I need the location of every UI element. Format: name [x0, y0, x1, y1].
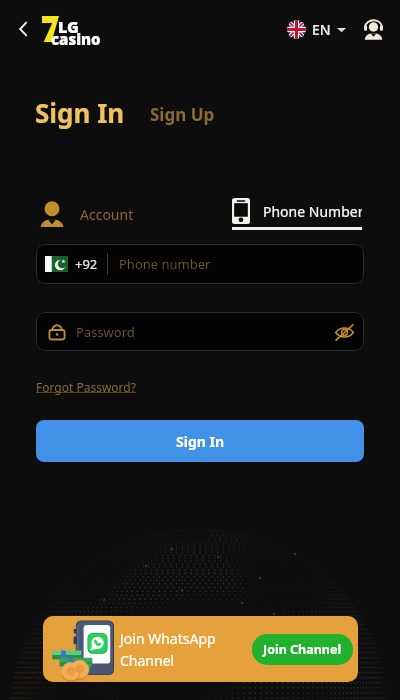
staticText: Phone Number: [263, 202, 362, 221]
button[interactable]: Sign In: [36, 420, 364, 462]
staticText: Sign In: [176, 432, 225, 451]
button[interactable]: Sign Up: [150, 103, 215, 126]
staticText: Phone number: [119, 255, 211, 273]
staticText: Password: [76, 323, 135, 341]
staticText: Join Channel: [263, 641, 342, 658]
button[interactable]: Forgot Password?: [36, 378, 136, 396]
staticText: casino: [51, 29, 101, 49]
button[interactable]: Account: [36, 196, 196, 232]
button[interactable]: EN: [287, 16, 346, 43]
button[interactable]: +92: [36, 244, 364, 284]
button[interactable]: Join WhatsApp Channel: [43, 616, 358, 682]
button[interactable]: Sign In: [35, 95, 125, 130]
button[interactable]: Support: [359, 15, 387, 43]
staticText: Join WhatsApp Channel: [120, 629, 216, 670]
button[interactable]: 7LG casino: [42, 16, 100, 43]
button[interactable]: Back: [6, 12, 40, 46]
staticText: Account: [80, 205, 134, 224]
button[interactable]: Phone Number: [232, 196, 362, 230]
staticText: +92: [75, 255, 98, 273]
button[interactable]: Show password: [327, 315, 361, 349]
button[interactable]: Password: [36, 312, 364, 351]
staticText: LG: [58, 16, 79, 38]
button[interactable]: Join Channel: [252, 634, 353, 665]
staticText: EN: [312, 20, 331, 39]
